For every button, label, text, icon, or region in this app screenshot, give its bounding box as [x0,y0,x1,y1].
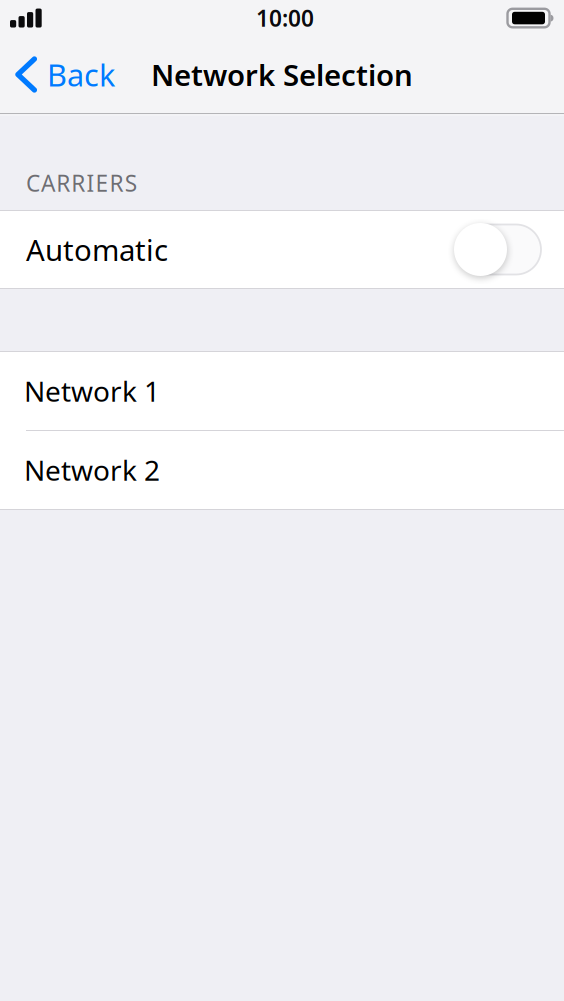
staticText: Automatic [26,230,168,269]
staticText: Network Selection [151,55,413,94]
staticText: Network 2 [24,451,160,489]
button[interactable]: Back [0,38,129,111]
button[interactable]: Network 1 [0,352,564,430]
button[interactable]: Automatic [454,223,541,276]
staticText: Network 1 [24,372,160,410]
staticText: 10:00 [256,3,314,33]
button[interactable]: Network 2 [0,431,564,509]
staticText: Back [47,54,115,95]
staticText: CARRIERS [26,168,137,198]
